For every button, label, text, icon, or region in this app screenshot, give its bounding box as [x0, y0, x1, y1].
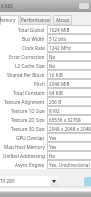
- staticText: 2048 MiB: [49, 81, 70, 87]
- staticText: Pitch: [34, 81, 45, 87]
- staticText: 1024 MiB: [49, 27, 70, 33]
- staticText: Clock Rate: [22, 45, 45, 51]
- staticText: No: [49, 63, 56, 69]
- staticText: L2 Cache Size: [15, 63, 45, 69]
- staticText: 512 bits: [49, 36, 67, 42]
- staticText: Texture 1D Size: [11, 108, 45, 114]
- staticText: Texture 2D Size: [11, 117, 45, 123]
- staticText: Async Engine: [15, 162, 45, 168]
- staticText: Error Correction: [9, 54, 45, 60]
- staticText: 6.563: [1, 3, 13, 9]
- staticText: Map Host Memory: [4, 144, 45, 150]
- staticText: Total Constant: [13, 90, 45, 96]
- staticText: Memory: [0, 17, 16, 23]
- button[interactable]: Close: [84, 177, 91, 187]
- button[interactable]: Performance: [20, 15, 51, 25]
- staticText: TX 285: [0, 178, 15, 184]
- staticText: Yes: [49, 144, 57, 150]
- staticText: 8192: [49, 108, 60, 114]
- staticText: About: [56, 17, 70, 23]
- staticText: 2048 x 2048 x 2048: [49, 126, 91, 132]
- staticText: GPU Overlap: [16, 135, 45, 141]
- staticText: Texture Alignment: [4, 99, 45, 105]
- staticText: No: [49, 54, 56, 60]
- staticText: Yes: [49, 135, 57, 141]
- staticText: Total Global: [18, 27, 45, 33]
- staticText: 256 B: [49, 99, 62, 105]
- button[interactable]: About: [53, 15, 72, 25]
- staticText: No: [49, 153, 56, 159]
- staticText: 65536 x 32768: [49, 117, 81, 123]
- staticText: 16 KiB: [49, 72, 63, 78]
- button[interactable]: Memory: [0, 15, 19, 25]
- staticText: Performance: [21, 17, 50, 23]
- staticText: 64 KiB: [49, 90, 63, 96]
- staticText: Bus Width: [22, 36, 45, 42]
- staticText: Unified Addressing: [3, 153, 45, 159]
- button[interactable]: TX 285: [0, 176, 58, 186]
- staticText: 1242 MHz: [49, 45, 71, 51]
- staticText: Shared Per Block: [7, 72, 45, 78]
- staticText: Yes, Unidirectional: [49, 162, 90, 168]
- staticText: Texture 3D Size: [11, 126, 45, 132]
